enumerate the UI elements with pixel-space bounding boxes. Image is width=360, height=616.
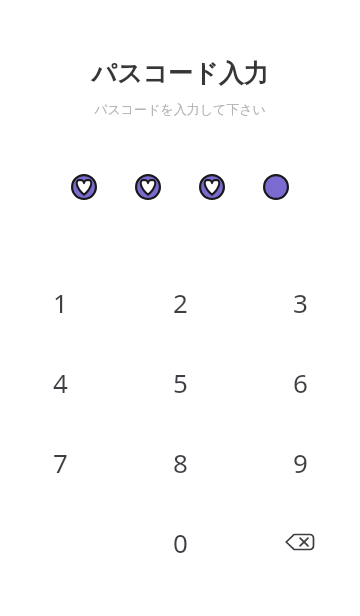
staticText: 0 bbox=[173, 525, 188, 560]
staticText: 9 bbox=[293, 445, 308, 480]
button[interactable]: 0 bbox=[120, 502, 240, 582]
staticText: 2 bbox=[173, 285, 188, 320]
button[interactable]: 4 bbox=[0, 342, 120, 422]
staticText: 4 bbox=[53, 365, 68, 400]
button[interactable]: 7 bbox=[0, 422, 120, 502]
button[interactable]: Backspace bbox=[240, 502, 360, 582]
staticText: 8 bbox=[173, 445, 188, 480]
button[interactable]: 8 bbox=[120, 422, 240, 502]
staticText: 7 bbox=[53, 445, 68, 480]
button[interactable]: 1 bbox=[0, 262, 120, 342]
staticText: 1 bbox=[53, 285, 68, 320]
button[interactable]: 2 bbox=[120, 262, 240, 342]
button[interactable]: 9 bbox=[240, 422, 360, 502]
staticText: 6 bbox=[293, 365, 308, 400]
button[interactable]: 3 bbox=[240, 262, 360, 342]
button[interactable]: 5 bbox=[120, 342, 240, 422]
staticText: パスコード入力 bbox=[91, 58, 269, 89]
staticText: 5 bbox=[173, 365, 188, 400]
staticText: パスコードを入力して下さい bbox=[94, 101, 266, 117]
button[interactable]: 6 bbox=[240, 342, 360, 422]
staticText: 3 bbox=[293, 285, 308, 320]
